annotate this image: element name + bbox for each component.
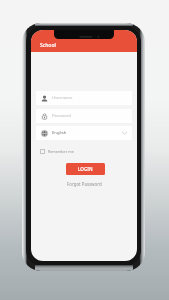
button[interactable]: Username <box>36 91 132 105</box>
staticText: Remember me <box>48 149 74 154</box>
staticText: English <box>52 130 67 136</box>
other: Choose language <box>122 131 127 135</box>
staticText: LOGIN <box>78 166 93 172</box>
staticText: Password <box>52 113 71 119</box>
button[interactable]: Remember me <box>40 149 74 154</box>
button[interactable]: English <box>36 126 132 140</box>
staticText: School <box>40 42 56 49</box>
button[interactable]: LOGIN <box>66 163 105 175</box>
staticText: Username <box>52 95 73 101</box>
button[interactable]: Password <box>36 109 132 123</box>
button[interactable]: Forgot Password <box>67 181 102 187</box>
